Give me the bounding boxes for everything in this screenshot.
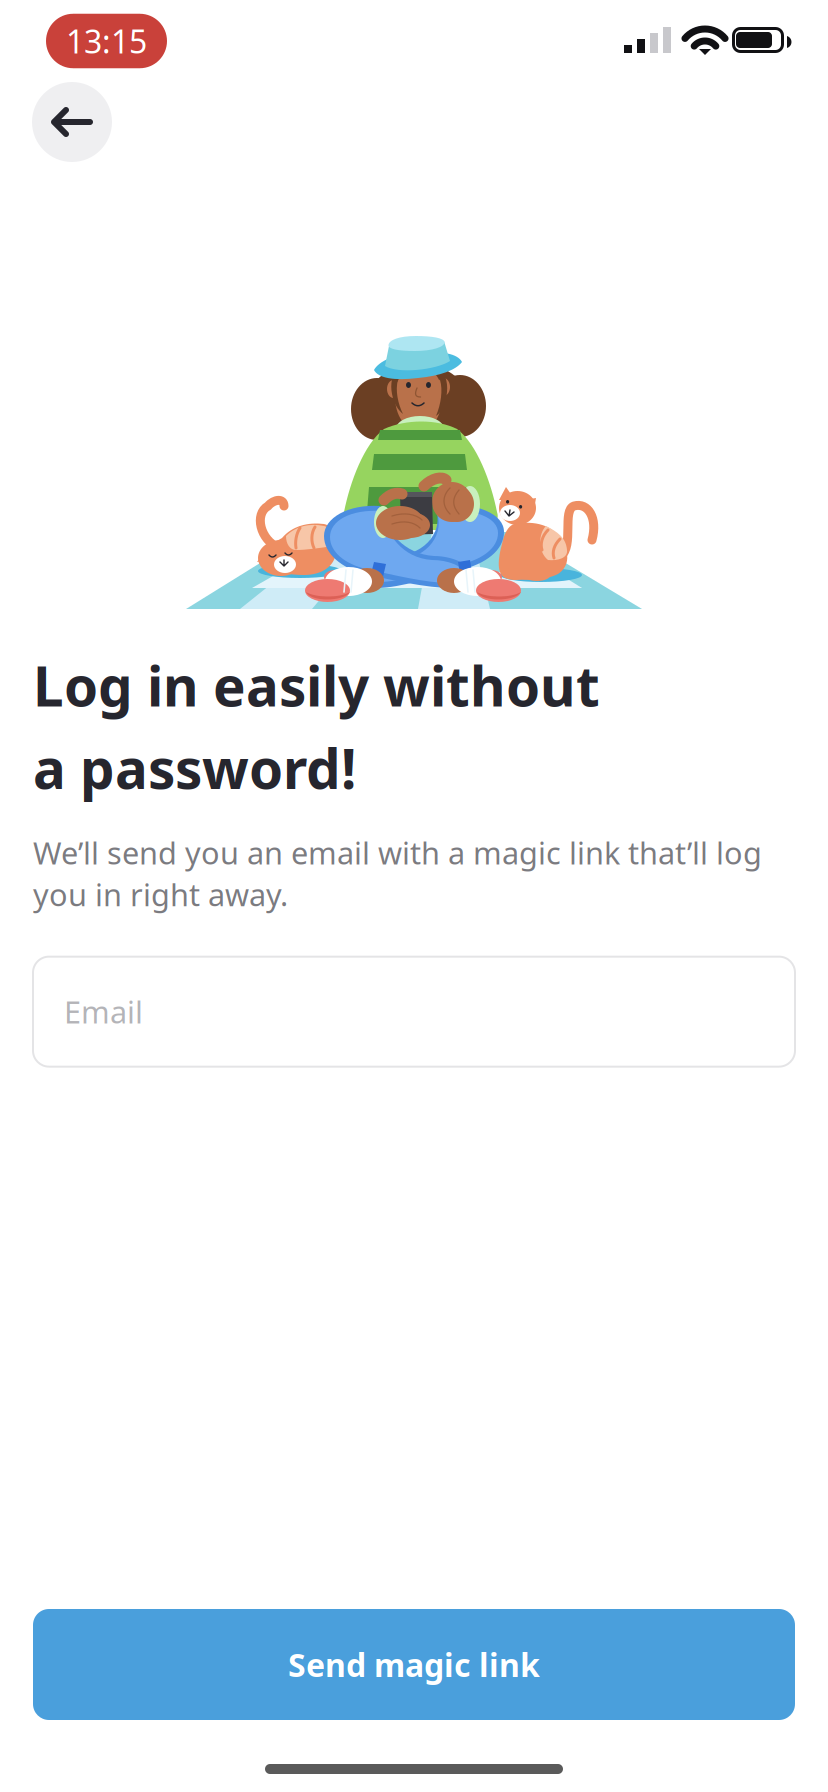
staticText: 13:15 bbox=[66, 20, 147, 62]
button[interactable]: Send magic link bbox=[33, 1609, 795, 1720]
staticText: Email bbox=[64, 991, 143, 1032]
staticText: Log in easily without a password! bbox=[33, 649, 600, 804]
staticText: We’ll send you an email with a magic lin… bbox=[33, 832, 762, 915]
button[interactable]: Back bbox=[32, 82, 112, 162]
staticText: Send magic link bbox=[288, 1643, 540, 1686]
